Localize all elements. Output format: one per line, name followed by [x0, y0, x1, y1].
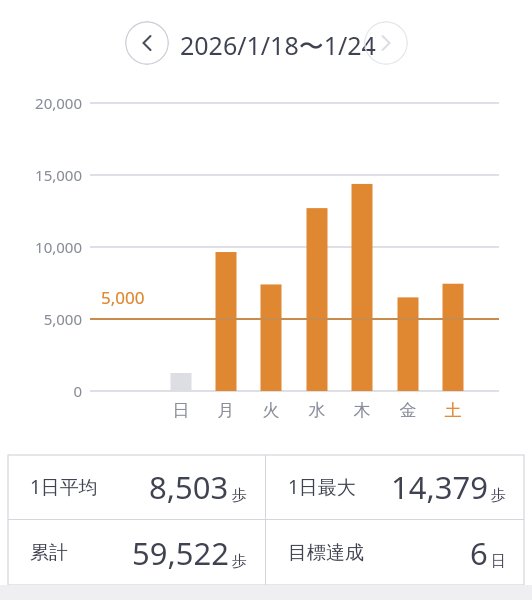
staticText: 8,503 — [149, 466, 229, 508]
staticText: 金 — [392, 400, 424, 421]
staticText: 0 — [0, 381, 82, 401]
button[interactable]: Next week — [364, 21, 408, 65]
staticText: 月 — [210, 400, 242, 421]
staticText: 木 — [346, 400, 378, 421]
staticText: 歩 — [232, 552, 247, 571]
staticText: 累計 — [30, 541, 68, 565]
staticText: 5,000 — [101, 286, 145, 309]
button[interactable]: 累計 — [8, 520, 265, 585]
staticText: 1日平均 — [30, 474, 98, 500]
button[interactable]: Previous week — [125, 21, 169, 65]
staticText: 14,379 — [391, 466, 488, 508]
staticText: 水 — [301, 400, 333, 421]
staticText: 歩 — [491, 486, 506, 505]
staticText: 歩 — [232, 486, 247, 505]
staticText: 1日最大 — [288, 474, 356, 500]
staticText: 5,000 — [0, 309, 82, 329]
staticText: 59,522 — [132, 532, 229, 574]
staticText: 目標達成 — [288, 541, 364, 565]
staticText: 20,000 — [0, 93, 82, 113]
staticText: 2026/1/18〜1/24 — [180, 28, 376, 62]
button[interactable]: 1日最大 — [266, 455, 524, 519]
staticText: 日 — [491, 552, 506, 571]
staticText: 土 — [437, 400, 469, 421]
staticText: 15,000 — [0, 165, 82, 185]
staticText: 日 — [165, 400, 197, 421]
staticText: 火 — [255, 400, 287, 421]
button[interactable]: 目標達成 — [266, 520, 524, 585]
staticText: 6 — [470, 532, 488, 574]
staticText: 10,000 — [0, 237, 82, 257]
button[interactable]: 1日平均 — [8, 455, 265, 519]
